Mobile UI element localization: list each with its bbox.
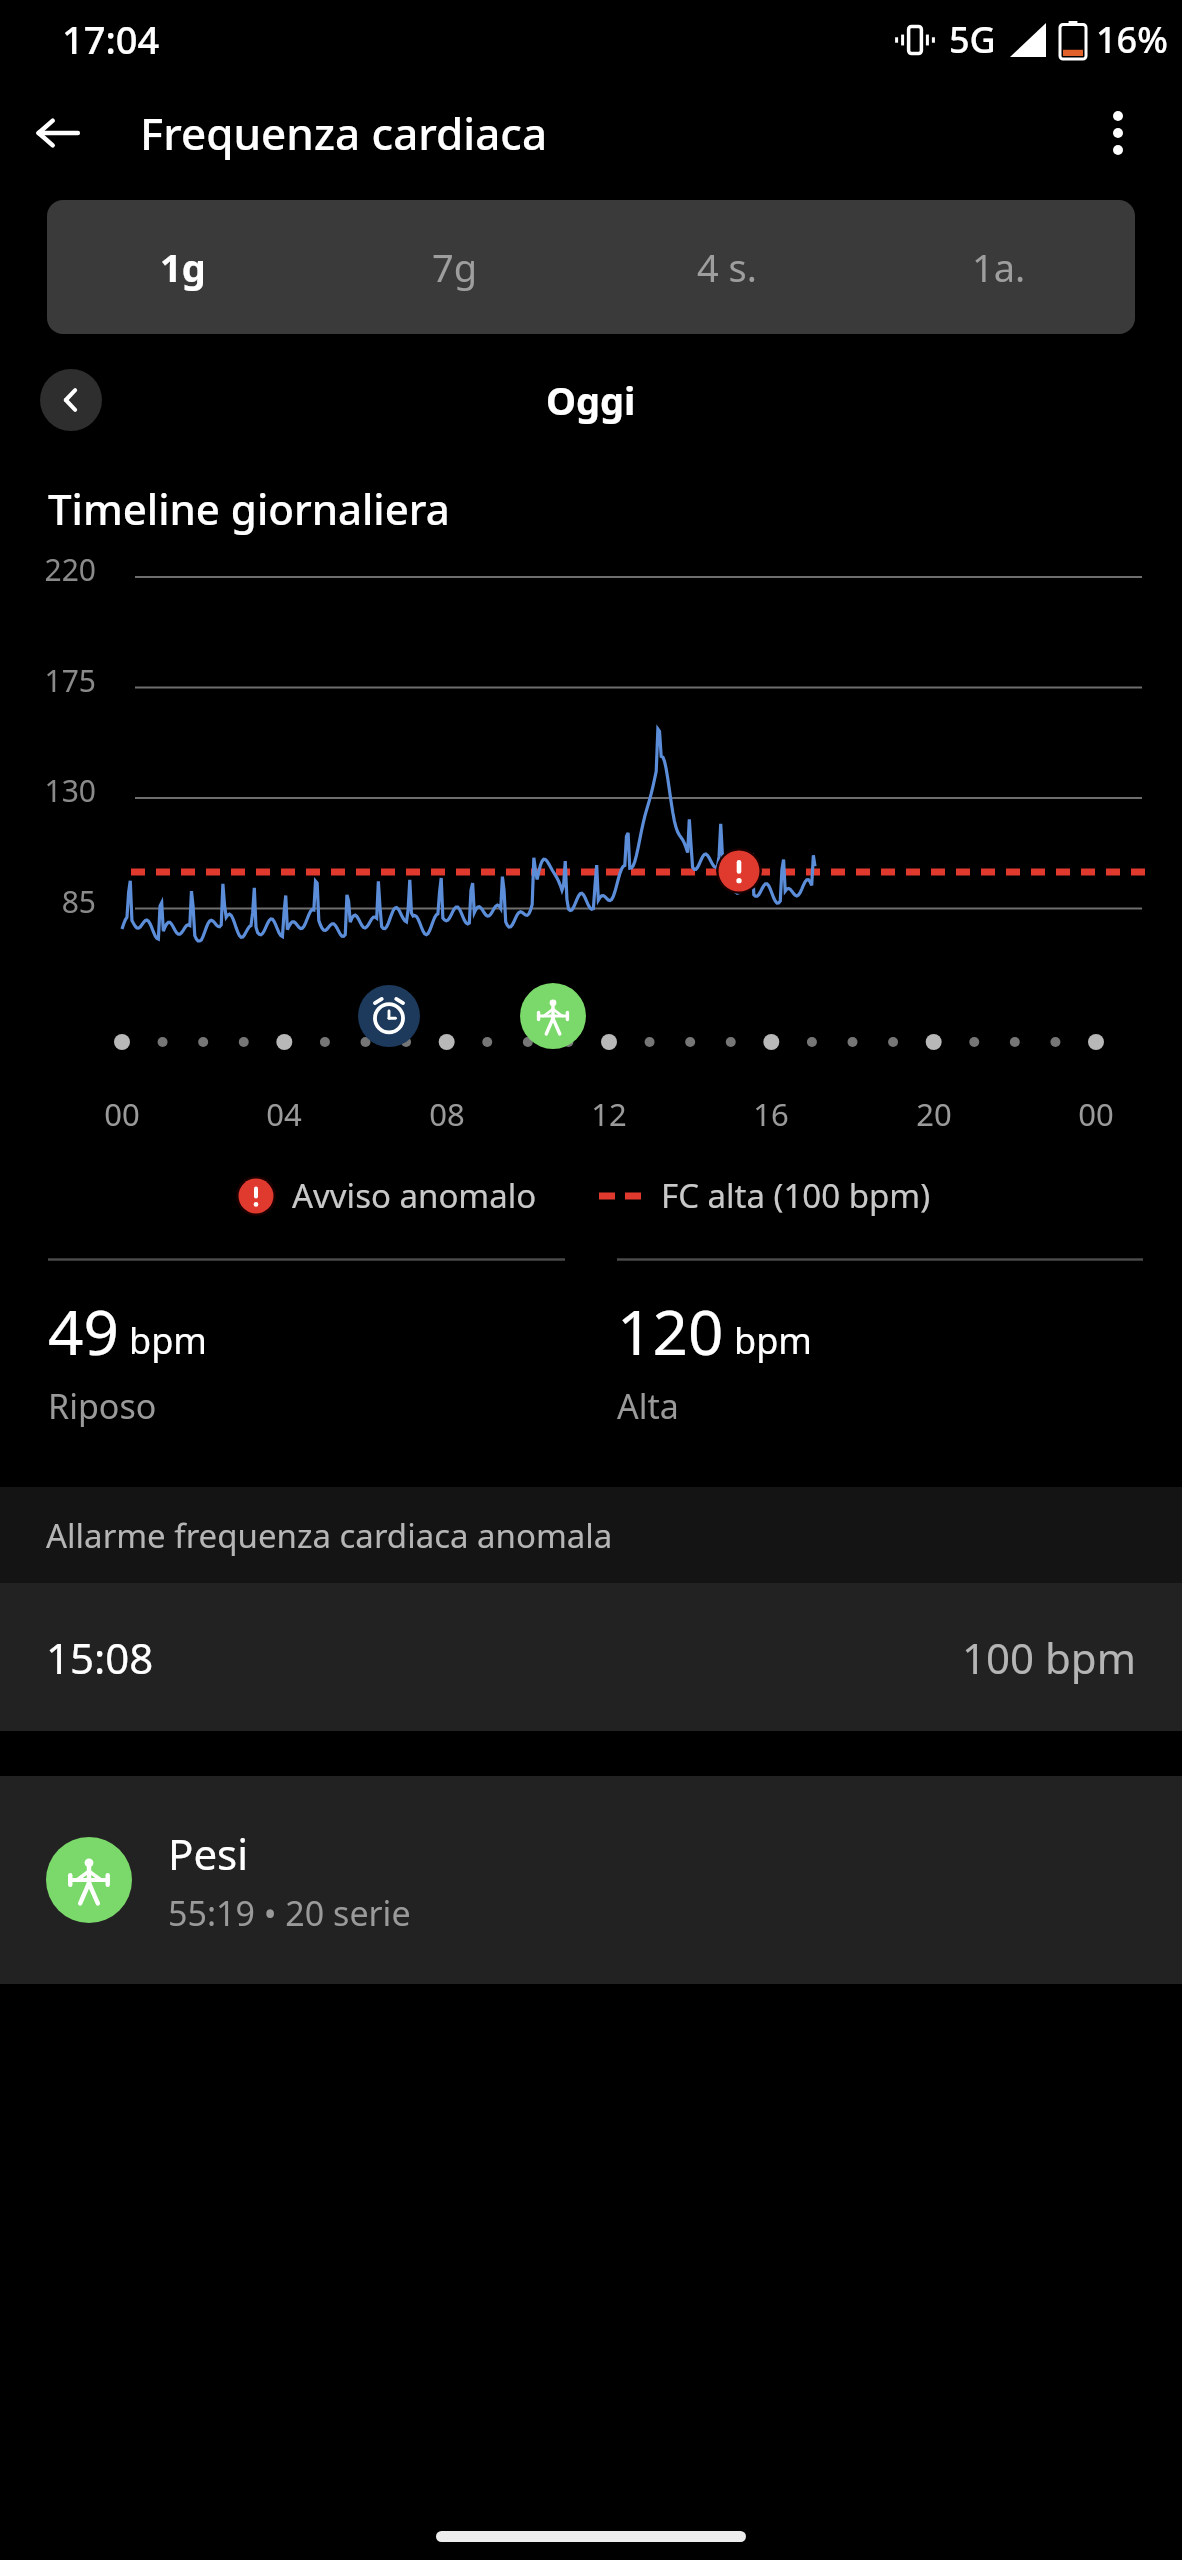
staticText: 85 xyxy=(0,881,96,922)
staticText: 20 xyxy=(904,1093,964,1135)
staticText: 16% xyxy=(1096,15,1168,64)
staticText: Timeline giornaliera xyxy=(48,480,450,537)
staticText: 7g xyxy=(432,241,478,293)
staticText: 04 xyxy=(254,1093,314,1135)
staticText: 00 xyxy=(92,1093,152,1135)
staticText: 100 bpm xyxy=(962,1629,1136,1686)
staticText: Pesi xyxy=(168,1825,249,1882)
staticText: Alta xyxy=(617,1383,679,1429)
staticText: 175 xyxy=(0,660,96,701)
staticText: 1g xyxy=(160,241,206,293)
staticText: Oggi xyxy=(546,374,636,426)
button[interactable]: 120 xyxy=(617,1258,1143,1429)
staticText: 49 xyxy=(48,1289,119,1373)
staticText: Frequenza cardiaca xyxy=(140,103,548,163)
staticText: bpm xyxy=(734,1316,812,1365)
staticText: 1a. xyxy=(972,241,1026,293)
staticText: Riposo xyxy=(48,1383,157,1429)
staticText: bpm xyxy=(129,1316,207,1365)
staticText: 120 xyxy=(617,1289,724,1373)
button[interactable]: 15:08 xyxy=(0,1583,1182,1731)
staticText: 15:08 xyxy=(46,1629,154,1686)
staticText: 55:19 • 20 serie xyxy=(168,1890,411,1936)
staticText: Avviso anomalo xyxy=(292,1173,537,1218)
button[interactable]: 7g xyxy=(319,200,591,334)
button[interactable]: 49 xyxy=(48,1258,565,1429)
button[interactable]: More options xyxy=(1082,97,1154,169)
button[interactable]: Pesi xyxy=(0,1776,1182,1984)
staticText: 12 xyxy=(579,1093,639,1135)
staticText: 4 s. xyxy=(697,241,758,293)
staticText: 08 xyxy=(417,1093,477,1135)
staticText: 5G xyxy=(949,15,996,64)
button[interactable]: Anomalous alert xyxy=(716,848,762,894)
button[interactable]: 1a. xyxy=(863,200,1135,334)
button[interactable]: 4 s. xyxy=(591,200,863,334)
staticText: 16 xyxy=(741,1093,801,1135)
staticText: 130 xyxy=(0,770,96,811)
staticText: 17:04 xyxy=(62,13,160,65)
button[interactable]: Back xyxy=(20,95,96,171)
staticText: Allarme frequenza cardiaca anomala xyxy=(46,1513,613,1558)
button[interactable]: Workout event xyxy=(520,983,586,1049)
staticText: 220 xyxy=(0,549,96,590)
button[interactable]: Previous day xyxy=(40,369,102,431)
staticText: 00 xyxy=(1066,1093,1126,1135)
staticText: FC alta (100 bpm) xyxy=(661,1173,931,1218)
button[interactable]: Alarm event xyxy=(358,985,420,1047)
button[interactable]: 1g xyxy=(47,200,319,334)
